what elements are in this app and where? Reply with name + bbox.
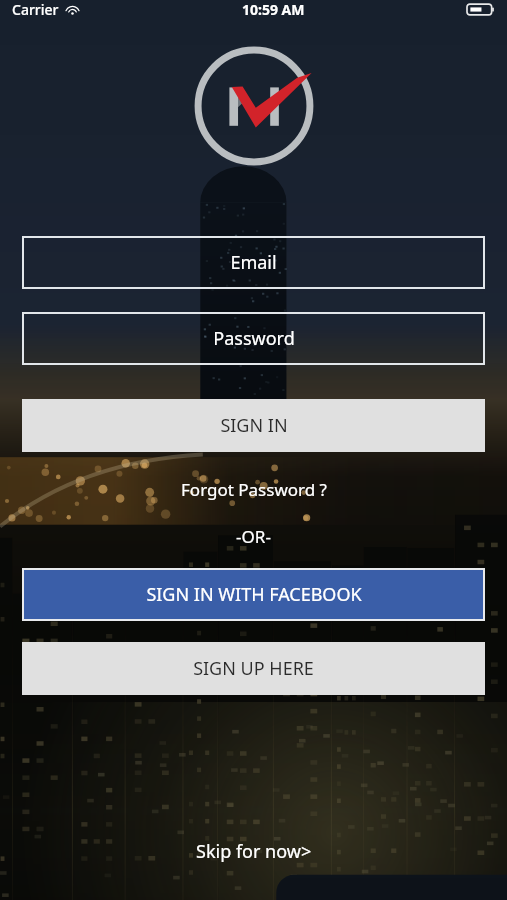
staticText: Skip for now> bbox=[196, 839, 312, 864]
button[interactable]: Password bbox=[22, 312, 485, 365]
staticText: 10:59 AM bbox=[242, 0, 305, 19]
button[interactable]: SIGN UP HERE bbox=[22, 642, 485, 695]
staticText: Forgot Password ? bbox=[181, 478, 327, 501]
staticText: Carrier bbox=[12, 0, 59, 19]
staticText: SIGN IN WITH FACEBOOK bbox=[146, 582, 362, 607]
staticText: SIGN IN bbox=[220, 413, 288, 438]
staticText: Password bbox=[213, 326, 295, 351]
button[interactable]: Email bbox=[22, 236, 485, 289]
button[interactable]: SIGN IN bbox=[22, 399, 485, 452]
button[interactable]: Skip for now> bbox=[182, 833, 326, 870]
staticText: Email bbox=[230, 250, 277, 275]
staticText: SIGN UP HERE bbox=[193, 656, 314, 681]
button[interactable]: SIGN IN WITH FACEBOOK bbox=[22, 568, 485, 621]
button[interactable]: Forgot Password ? bbox=[0, 472, 507, 506]
staticText: -OR- bbox=[236, 525, 271, 548]
